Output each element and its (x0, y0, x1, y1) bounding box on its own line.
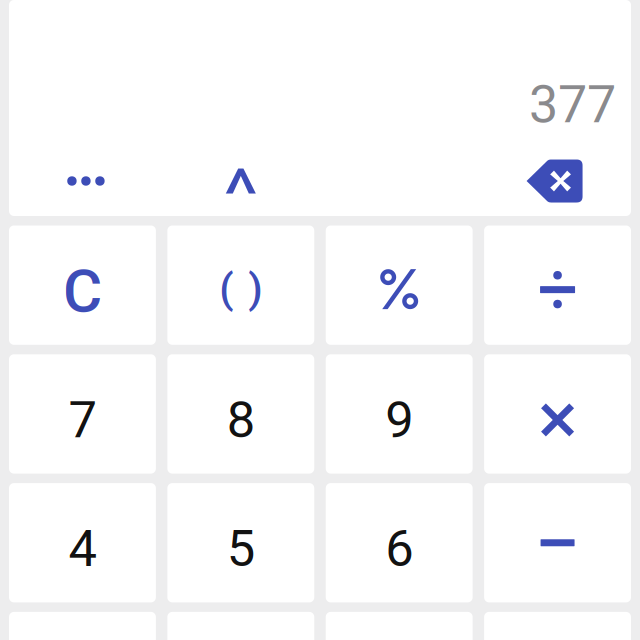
staticText: ( (219, 264, 233, 313)
button[interactable]: Clear (9, 225, 156, 345)
staticText: 4 (68, 519, 96, 578)
button[interactable]: 6 (326, 483, 473, 602)
staticText: C (63, 256, 102, 326)
button[interactable]: Minus (484, 483, 631, 602)
button[interactable]: 4 (9, 483, 156, 602)
staticText: 9 (385, 390, 413, 450)
staticText: 5 (227, 519, 255, 578)
staticText: ) (248, 264, 262, 313)
button[interactable]: 7 (9, 354, 156, 474)
button[interactable]: 8 (167, 354, 314, 474)
staticText: 8 (227, 390, 255, 450)
staticText: 7 (68, 390, 96, 450)
button[interactable]: Parentheses (167, 225, 314, 345)
button[interactable]: Divide (484, 225, 631, 345)
staticText: 6 (385, 519, 413, 578)
button[interactable]: Percent (326, 225, 473, 345)
button[interactable]: Multiply (484, 354, 631, 474)
button[interactable]: 5 (167, 483, 314, 602)
button[interactable]: Exponent (167, 155, 314, 207)
button[interactable]: Delete (484, 155, 631, 207)
button[interactable]: More functions (9, 155, 156, 207)
staticText: 377 (529, 74, 616, 135)
button[interactable]: 9 (326, 354, 473, 474)
